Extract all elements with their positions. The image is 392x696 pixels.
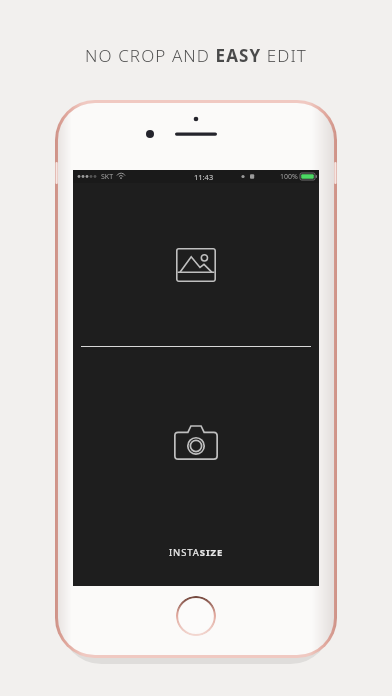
staticText: NO CROP AND EASY EDIT [85, 44, 307, 67]
button[interactable]: Home [176, 596, 216, 636]
staticText: 11:43 [194, 172, 214, 182]
staticText: SKT [101, 172, 114, 182]
staticText: 100% [280, 172, 298, 182]
button[interactable]: Take a photo with camera [73, 347, 319, 537]
staticText: INSTASIZE [169, 546, 224, 559]
button[interactable]: Choose photo from gallery [73, 183, 319, 346]
